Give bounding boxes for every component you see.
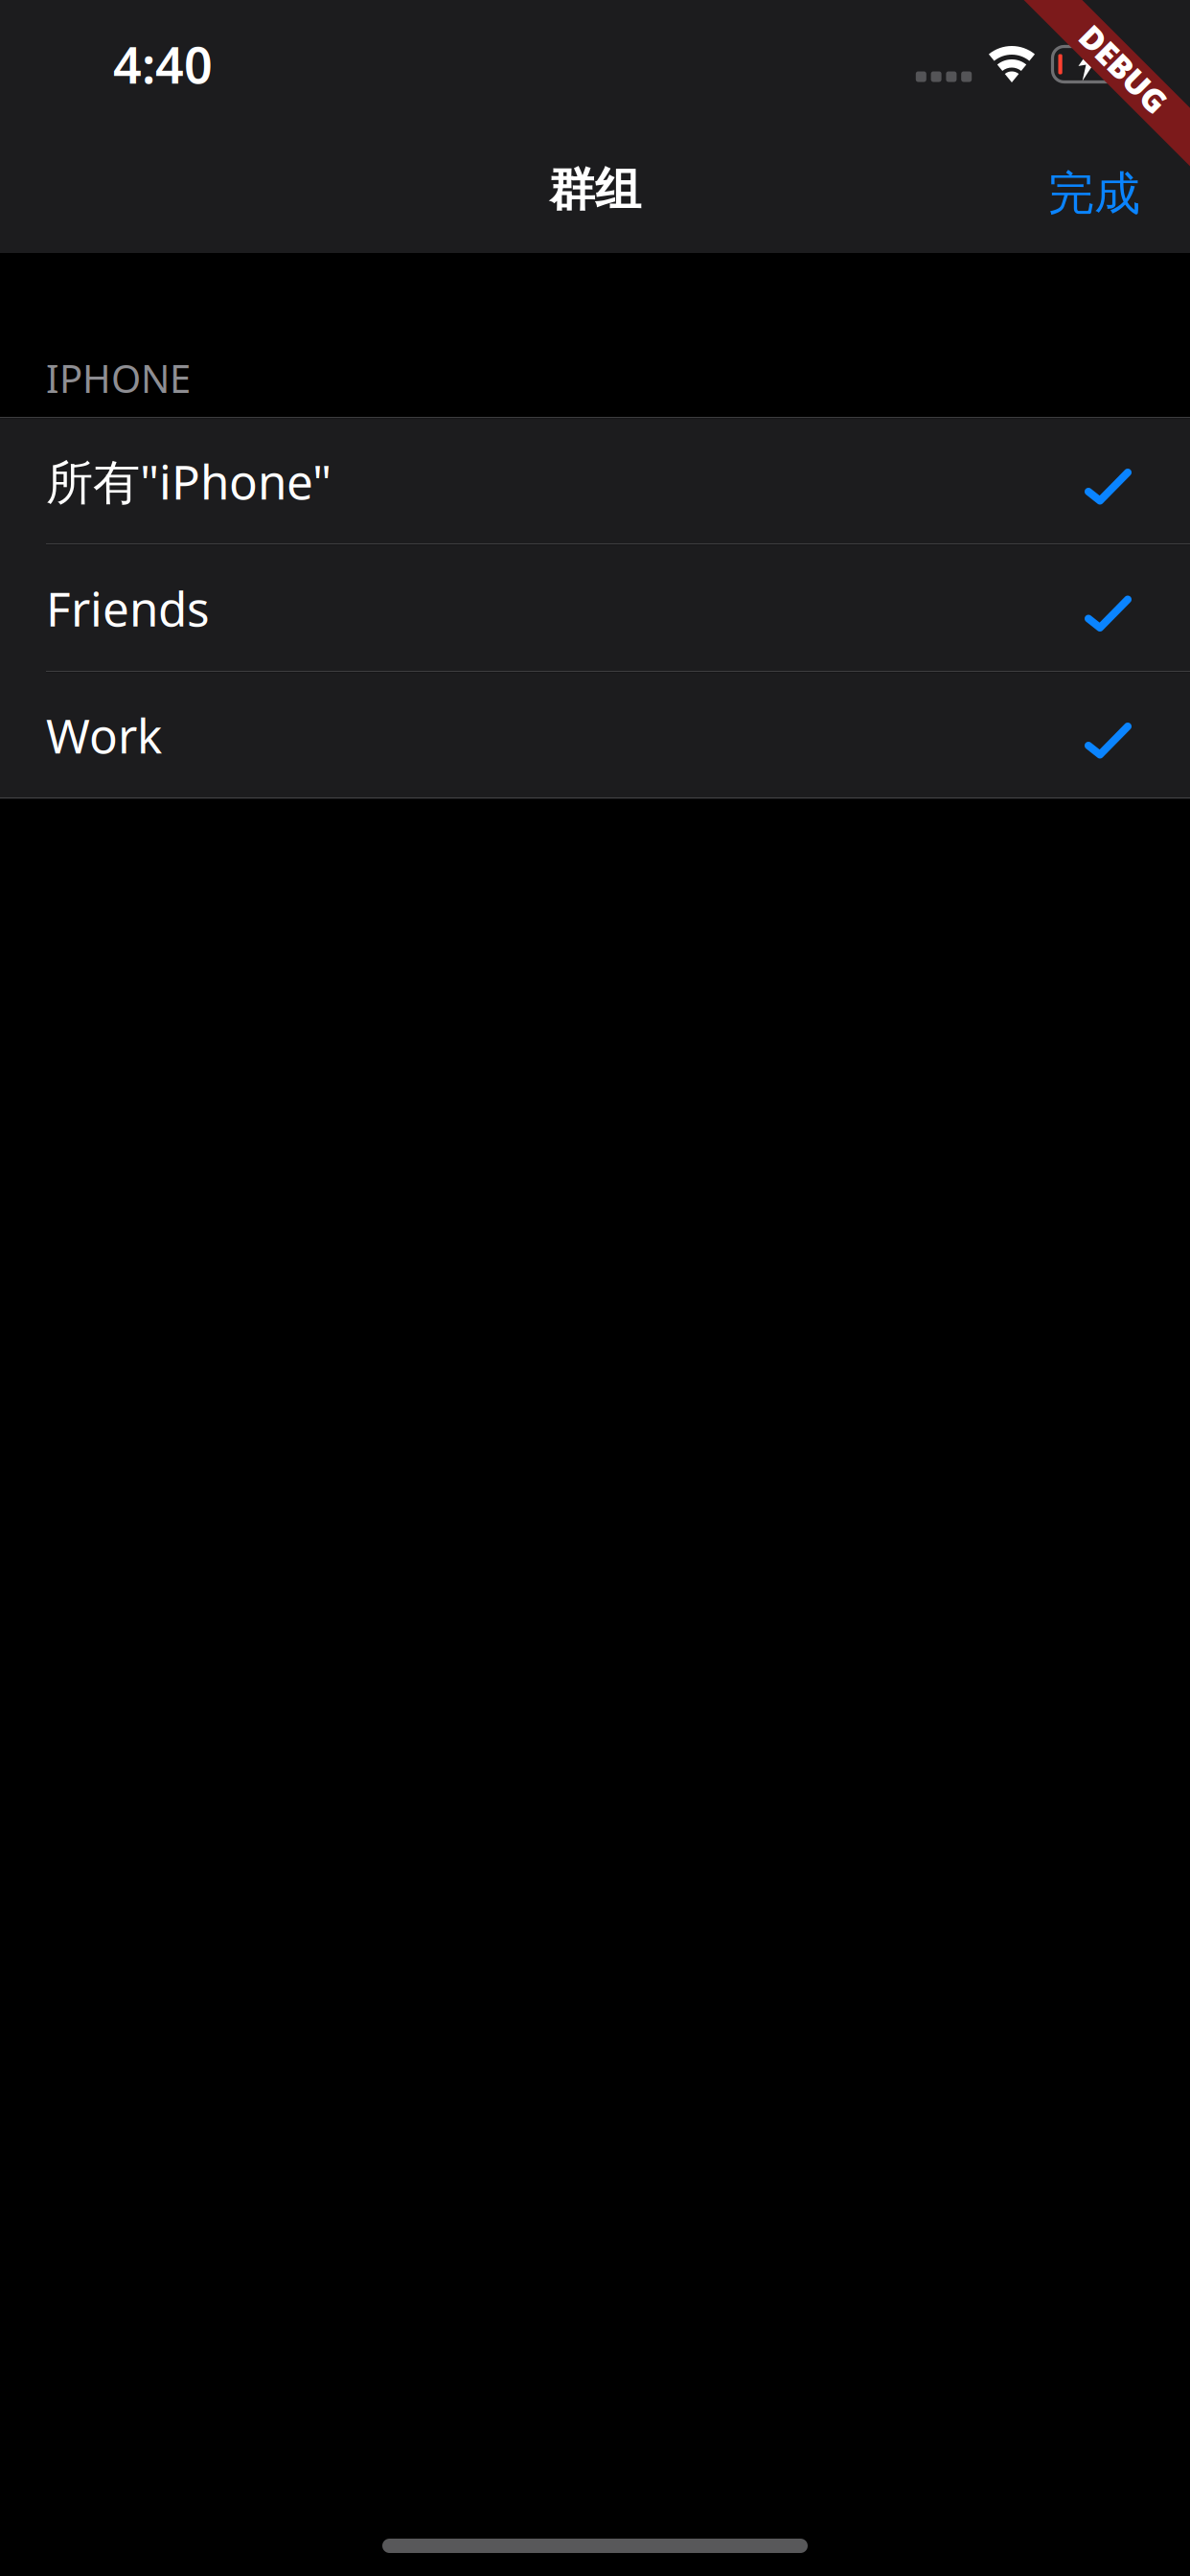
button[interactable]: Friends: [0, 545, 1190, 671]
staticText: DEBUG: [1069, 48, 1179, 90]
staticText: 所有"iPhone": [46, 450, 332, 512]
button[interactable]: 所有"iPhone": [0, 419, 1190, 543]
staticText: 4:40: [113, 31, 213, 97]
button[interactable]: Work: [0, 673, 1190, 797]
staticText: IPHONE: [46, 353, 191, 403]
staticText: 群组: [549, 161, 641, 218]
button[interactable]: 完成: [1023, 140, 1165, 239]
staticText: Work: [46, 704, 162, 766]
staticText: 完成: [1048, 165, 1140, 222]
staticText: Friends: [46, 577, 210, 639]
